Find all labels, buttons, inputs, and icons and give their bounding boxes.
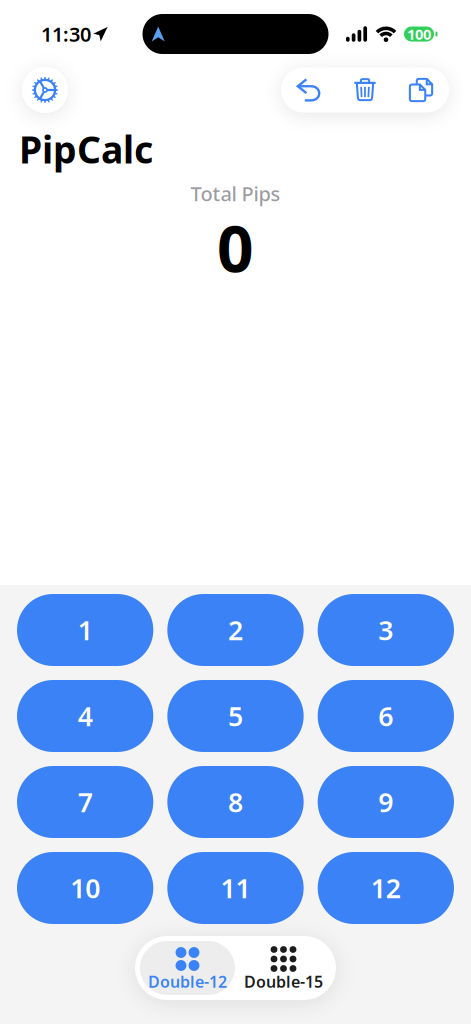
button[interactable]: 10 bbox=[17, 852, 153, 924]
staticText: 12 bbox=[371, 870, 401, 906]
staticText: 6 bbox=[378, 698, 393, 734]
button[interactable]: 12 bbox=[318, 852, 454, 924]
button[interactable]: 4 bbox=[17, 680, 153, 752]
staticText: 1 bbox=[78, 612, 93, 648]
button[interactable]: 11 bbox=[167, 852, 304, 924]
button[interactable]: 2 bbox=[167, 594, 304, 666]
staticText: Total Pips bbox=[190, 180, 280, 207]
button[interactable]: Clear bbox=[337, 67, 393, 112]
button[interactable]: Double-15 bbox=[236, 941, 331, 995]
staticText: 5 bbox=[228, 698, 243, 734]
staticText: 11 bbox=[220, 870, 250, 906]
staticText: 8 bbox=[228, 784, 243, 820]
staticText: Double-12 bbox=[148, 971, 227, 992]
button[interactable]: Undo bbox=[281, 67, 337, 112]
staticText: 10 bbox=[70, 870, 100, 906]
staticText: 4 bbox=[78, 698, 93, 734]
staticText: 9 bbox=[378, 784, 393, 820]
staticText: 100 bbox=[407, 24, 431, 44]
button[interactable]: Settings bbox=[22, 67, 68, 113]
staticText: 0 bbox=[217, 205, 254, 290]
staticText: 7 bbox=[78, 784, 93, 820]
button[interactable]: 8 bbox=[167, 766, 304, 838]
staticText: 2 bbox=[228, 612, 243, 648]
staticText: Double-15 bbox=[244, 971, 323, 992]
button[interactable]: 5 bbox=[167, 680, 304, 752]
staticText: PipCalc bbox=[19, 124, 153, 174]
staticText: 11:30 bbox=[41, 21, 91, 47]
button[interactable]: Double-12 bbox=[140, 941, 235, 995]
button[interactable]: 6 bbox=[318, 680, 454, 752]
button[interactable]: 7 bbox=[17, 766, 153, 838]
button[interactable]: Copy bbox=[393, 67, 449, 112]
button[interactable]: 3 bbox=[318, 594, 454, 666]
staticText: 3 bbox=[378, 612, 393, 648]
button[interactable]: 9 bbox=[318, 766, 454, 838]
button[interactable]: 1 bbox=[17, 594, 153, 666]
